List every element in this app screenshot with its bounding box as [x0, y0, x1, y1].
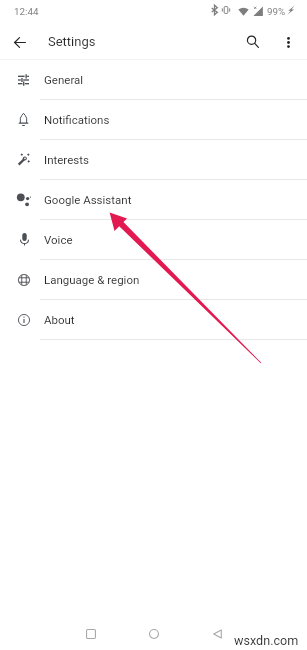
staticText: Settings — [48, 34, 96, 49]
staticText: Voice — [44, 233, 73, 246]
button[interactable]: About — [0, 300, 307, 340]
button[interactable]: Home — [139, 619, 168, 648]
staticText: General — [44, 73, 84, 86]
staticText: Language & region — [44, 273, 140, 286]
staticText: Interests — [44, 153, 89, 166]
button[interactable]: Google Assistant — [0, 180, 307, 220]
staticText: About — [44, 313, 75, 326]
button[interactable]: Voice — [0, 220, 307, 260]
button[interactable]: General — [0, 60, 307, 100]
button[interactable]: Recent apps — [76, 619, 105, 648]
staticText: wsxdn.com — [234, 633, 299, 648]
button[interactable]: Language & region — [0, 260, 307, 300]
button[interactable]: Navigate up — [6, 28, 34, 56]
staticText: 12:44 — [14, 6, 39, 17]
staticText: Google Assistant — [44, 193, 132, 206]
button[interactable]: Back — [203, 619, 232, 648]
button[interactable]: More options — [276, 30, 300, 54]
button[interactable]: Notifications — [0, 100, 307, 140]
staticText: 99% — [267, 6, 286, 17]
staticText: Notifications — [44, 113, 110, 126]
button[interactable]: Search — [239, 28, 267, 56]
button[interactable]: Interests — [0, 140, 307, 180]
